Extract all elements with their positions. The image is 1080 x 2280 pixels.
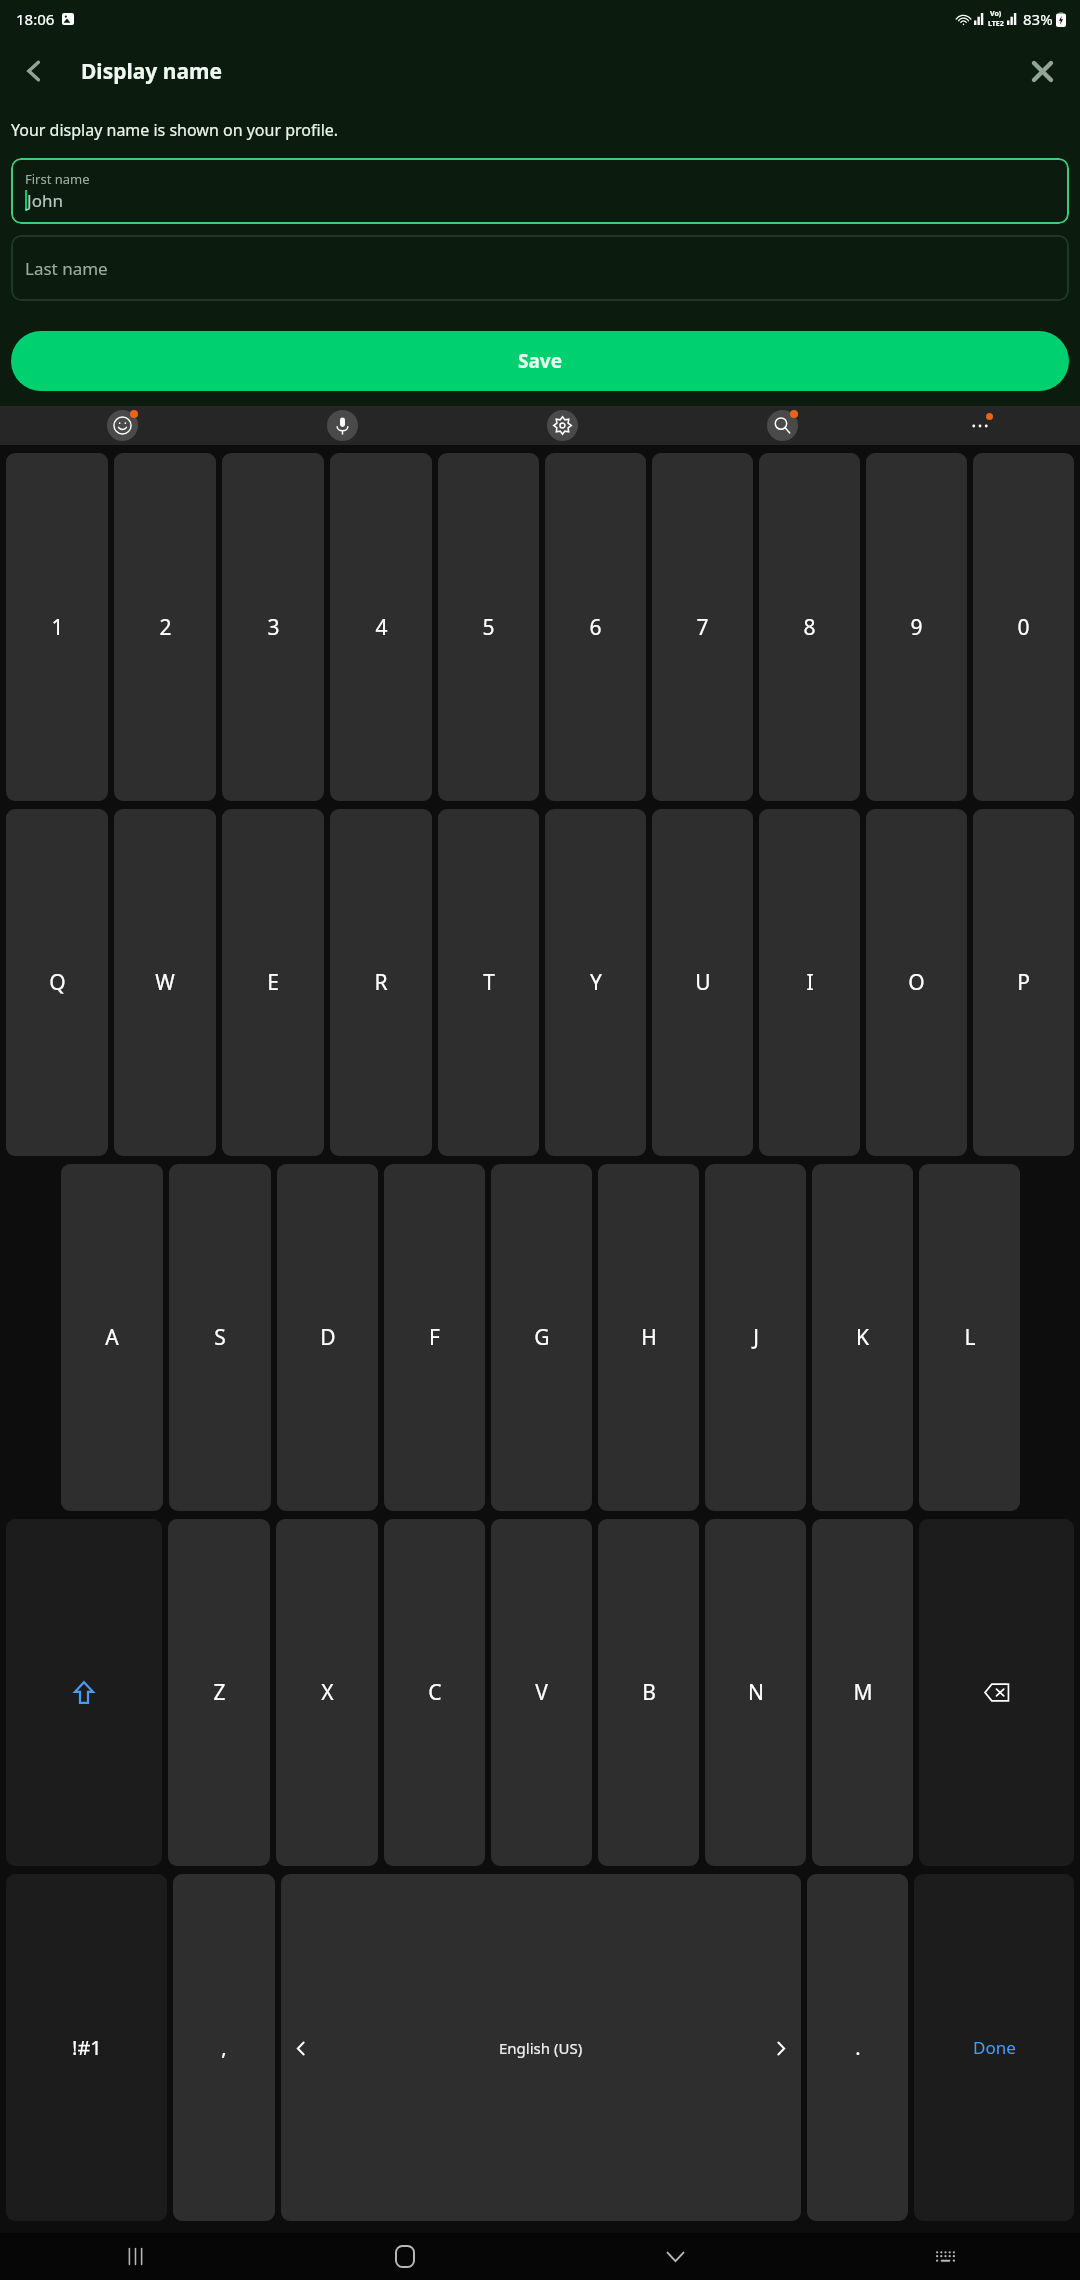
button[interactable]: 7 [652,453,753,801]
button[interactable]: More options [892,406,1068,445]
button[interactable]: Done [914,1874,1074,2221]
staticText: B [642,1678,656,1707]
staticText: C [428,1678,442,1707]
button[interactable]: G [491,1164,592,1511]
button[interactable]: C [384,1519,485,1866]
button[interactable]: I [759,809,860,1156]
staticText: P [1017,968,1030,997]
staticText: R [374,968,388,997]
button[interactable]: 1 [6,453,108,801]
button[interactable]: Y [545,809,646,1156]
button[interactable]: Q [6,809,108,1156]
button[interactable]: 8 [759,453,860,801]
staticText: 18:06 [16,9,55,29]
staticText: Q [49,968,66,997]
button[interactable]: N [705,1519,806,1866]
button[interactable]: H [598,1164,699,1511]
button[interactable]: Save [11,331,1069,391]
button[interactable]: Shift [6,1519,162,1866]
button[interactable]: 4 [330,453,432,801]
staticText: 7 [696,613,709,642]
button[interactable]: E [222,809,324,1156]
button[interactable]: Change keyboard [810,2233,1080,2280]
staticText: LTE2 [988,19,1004,29]
button[interactable]: V [491,1519,592,1866]
button[interactable]: Back [6,43,62,99]
button[interactable]: !#1 [6,1874,167,2221]
button[interactable]: M [812,1519,913,1866]
button[interactable]: Backspace [919,1519,1074,1866]
staticText: X [321,1678,334,1707]
button[interactable]: Close [1016,45,1068,97]
button[interactable]: 6 [545,453,646,801]
button[interactable]: . [807,1874,908,2221]
staticText: W [155,968,175,997]
button[interactable]: T [438,809,539,1156]
button[interactable]: A [61,1164,163,1511]
staticText: 83% [1023,9,1053,29]
button[interactable]: F [384,1164,485,1511]
staticText: T [483,968,495,997]
staticText: E [267,968,279,997]
button[interactable]: X [276,1519,378,1866]
staticText: L [964,1323,976,1352]
button[interactable]: U [652,809,753,1156]
staticText: D [320,1323,336,1352]
staticText: 1 [51,613,64,642]
button[interactable]: Search [672,406,892,445]
button[interactable]: Voice input [232,406,452,445]
staticText: English (US) [499,2038,583,2058]
staticText: J [753,1323,759,1352]
button[interactable]: K [812,1164,913,1511]
staticText: Save [518,348,563,374]
button[interactable]: B [598,1519,699,1866]
button[interactable]: , [173,1874,275,2221]
staticText: !#1 [72,2034,102,2061]
staticText: U [695,968,711,997]
staticText: G [534,1323,550,1352]
button[interactable]: 9 [866,453,967,801]
staticText: First name [25,170,90,188]
staticText: 8 [803,613,816,642]
button[interactable]: 3 [222,453,324,801]
staticText: 0 [1017,613,1030,642]
staticText: 9 [910,613,923,642]
button[interactable]: Keyboard settings [452,406,672,445]
button[interactable]: J [705,1164,806,1511]
button[interactable]: L [919,1164,1020,1511]
staticText: N [748,1678,764,1707]
button[interactable]: 5 [438,453,539,801]
staticText: Vo) [990,9,1002,19]
button[interactable]: Hide keyboard [540,2233,810,2280]
button[interactable]: Last name [11,235,1069,301]
staticText: , [221,2034,227,2061]
staticText: Z [213,1678,226,1707]
button[interactable]: Space, English (US) [281,1874,801,2221]
staticText: K [856,1323,869,1352]
staticText: Display name [81,57,222,86]
staticText: Y [590,968,602,997]
staticText: . [855,2034,861,2061]
button[interactable]: R [330,809,432,1156]
staticText: 6 [589,613,602,642]
button[interactable]: P [973,809,1074,1156]
button[interactable]: W [114,809,216,1156]
staticText: H [641,1323,657,1352]
staticText: I [806,968,814,997]
staticText: John [27,189,63,212]
staticText: 5 [482,613,495,642]
staticText: 4 [375,613,388,642]
button[interactable]: 2 [114,453,216,801]
button[interactable]: Z [168,1519,270,1866]
button[interactable]: Emoji [12,406,232,445]
button[interactable]: Home [270,2233,540,2280]
button[interactable]: Recent apps [0,2233,270,2280]
staticText: V [535,1678,548,1707]
staticText: M [853,1678,873,1707]
button[interactable]: 0 [973,453,1074,801]
button[interactable]: D [277,1164,378,1511]
button[interactable]: O [866,809,967,1156]
staticText: Done [973,2036,1016,2059]
button[interactable]: S [169,1164,271,1511]
button[interactable]: First name [11,158,1069,224]
